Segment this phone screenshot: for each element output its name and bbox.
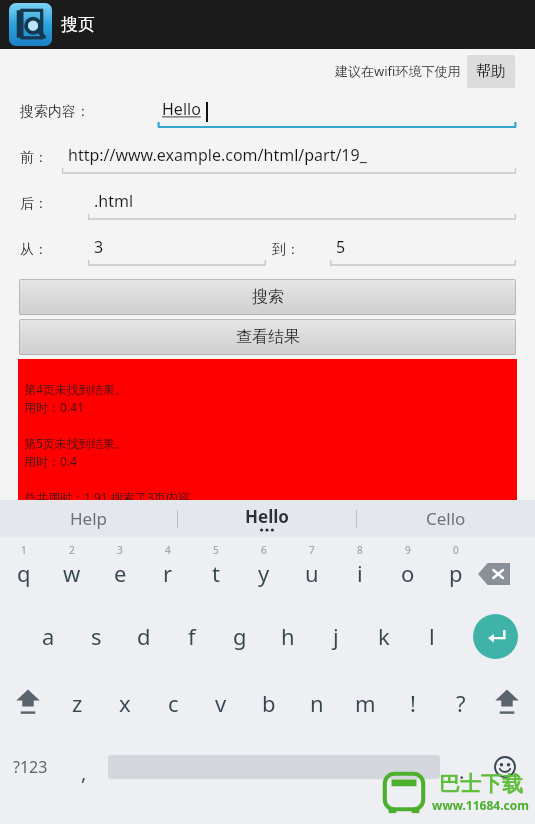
button[interactable]: 3 [88,231,266,269]
staticText: r [163,558,173,588]
staticText: v [215,688,227,718]
staticText: 用时：0.4 [24,453,77,469]
button[interactable]: f [168,603,216,669]
staticText: ! [410,688,416,718]
staticText: Help [70,507,108,530]
staticText: 搜页 [61,14,95,35]
staticText: 5 [213,543,219,557]
button[interactable]: 4 [144,537,192,603]
button[interactable]: 8 [336,537,384,603]
button[interactable]: h [264,603,312,669]
button[interactable]: 帮助 [467,55,515,88]
staticText: l [429,621,435,651]
staticText: d [137,621,151,651]
staticText: 搜索 [252,287,284,307]
staticText: t [212,558,220,588]
button[interactable]: 5 [330,231,516,269]
staticText: 8 [357,543,363,557]
button[interactable]: http://www.example.com/html/part/19_ [62,139,516,177]
button[interactable]: a [24,603,72,669]
button[interactable]: Space [108,755,440,779]
staticText: 后： [20,195,48,213]
staticText: ? [456,688,466,718]
staticText: 9 [405,543,411,557]
button[interactable]: 1 [0,537,48,603]
button[interactable]: Emoji [483,745,527,789]
button[interactable]: 0 [432,537,480,603]
button[interactable]: b [245,669,293,737]
button[interactable]: l [408,603,456,669]
staticText: o [401,558,415,588]
staticText: 3 [117,543,123,557]
button[interactable]: .html [88,185,516,223]
staticText: 第5页未找到结果。 [24,435,127,451]
button[interactable]: x [101,669,149,737]
button[interactable]: ?123 [2,737,58,797]
staticText: g [233,621,247,651]
button[interactable]: Backspace [466,537,522,603]
staticText: n [310,688,324,718]
staticText: z [72,688,83,718]
button[interactable]: m [341,669,389,737]
button[interactable]: ? [437,669,485,737]
staticText: www.11684.com [432,797,529,813]
button[interactable]: 3 [96,537,144,603]
staticText: x [119,688,131,718]
button[interactable]: 2 [48,537,96,603]
staticText: 到： [272,241,300,259]
button[interactable]: Enter [473,614,518,659]
button[interactable]: j [312,603,360,669]
staticText: q [17,558,31,588]
staticText: ?123 [13,756,48,778]
staticText: e [114,558,127,588]
staticText: b [262,688,276,718]
staticText: 搜索内容： [20,103,90,121]
staticText: f [188,621,196,651]
button[interactable]: k [360,603,408,669]
button[interactable]: Hello [158,93,516,131]
button[interactable]: 7 [288,537,336,603]
staticText: s [91,621,102,651]
staticText: 3 [94,236,104,258]
staticText: Hello [245,505,289,528]
staticText: 1 [21,543,27,557]
staticText: 前： [20,149,48,167]
staticText: 4 [165,543,171,557]
staticText: p [449,558,463,588]
staticText: a [42,621,55,651]
button[interactable]: 9 [384,537,432,603]
button[interactable]: s [72,603,120,669]
staticText: 从： [20,241,48,259]
button[interactable]: 6 [240,537,288,603]
button[interactable]: Help [0,500,177,537]
button[interactable]: . [442,745,482,797]
button[interactable]: 第4页未找到结果。 [18,359,517,523]
button[interactable]: c [149,669,197,737]
button[interactable]: d [120,603,168,669]
staticText: u [305,558,319,588]
button[interactable]: Shift [483,673,531,733]
staticText: , [81,759,87,786]
button[interactable]: Shift [4,673,52,733]
staticText: k [378,621,390,651]
button[interactable]: Hello [178,500,356,537]
button[interactable]: , [58,747,110,797]
staticText: i [357,558,363,588]
button[interactable]: 搜索 [19,279,516,315]
staticText: w [63,558,81,588]
staticText: http://www.example.com/html/part/19_ [68,144,367,166]
staticText: . [459,758,465,785]
button[interactable]: z [53,669,101,737]
button[interactable]: g [216,603,264,669]
staticText: 2 [69,543,75,557]
button[interactable]: 查看结果 [19,319,516,355]
staticText: c [168,688,179,718]
button[interactable]: v [197,669,245,737]
button[interactable]: 5 [192,537,240,603]
staticText: h [281,621,295,651]
staticText: y [258,558,270,588]
button[interactable]: Cello [357,500,535,537]
staticText: j [333,621,339,651]
button[interactable]: n [293,669,341,737]
button[interactable]: ! [389,669,437,737]
